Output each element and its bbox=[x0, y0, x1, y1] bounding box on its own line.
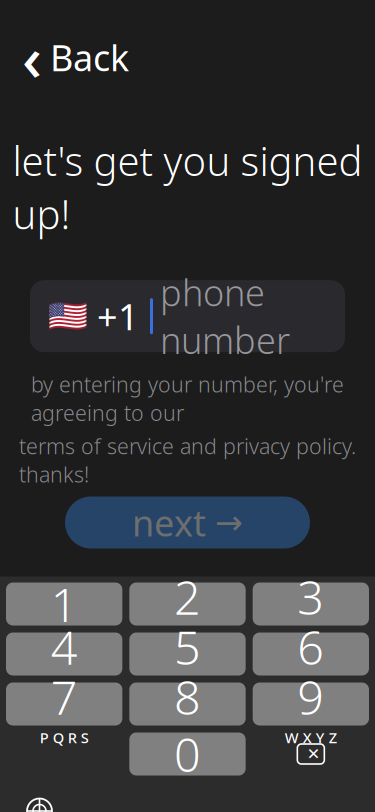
staticText: let's get you signed up! bbox=[12, 134, 362, 240]
button[interactable]: 9 bbox=[253, 682, 369, 725]
staticText: A B C bbox=[169, 628, 206, 647]
staticText: → bbox=[215, 504, 243, 541]
staticText: W X Y Z bbox=[285, 728, 337, 747]
staticText: 4 bbox=[51, 616, 78, 678]
button[interactable]: 2 bbox=[129, 582, 246, 625]
staticText: G H I bbox=[47, 678, 82, 697]
button[interactable]: 7 bbox=[6, 682, 122, 725]
staticText: phone number bbox=[160, 268, 290, 364]
staticText: 2 bbox=[174, 566, 201, 628]
staticText: 7 bbox=[51, 666, 78, 728]
button[interactable]: 3 bbox=[253, 582, 369, 625]
staticText: 🇺🇸 bbox=[48, 298, 88, 334]
staticText: 1 bbox=[51, 573, 78, 635]
staticText: terms of service and privacy policy. tha… bbox=[19, 432, 356, 488]
staticText: ✕ bbox=[307, 745, 320, 763]
button[interactable]: 🇺🇸 bbox=[30, 280, 345, 352]
button[interactable]: 6 bbox=[253, 632, 369, 675]
button[interactable]: 8 bbox=[129, 682, 246, 725]
staticText: +1 bbox=[97, 292, 139, 340]
staticText: by entering your number, you're agreeing… bbox=[31, 370, 344, 427]
staticText: D E F bbox=[293, 628, 328, 647]
button[interactable]: 4 bbox=[6, 632, 122, 675]
button[interactable]: 1 bbox=[6, 582, 122, 625]
staticText: T U V bbox=[169, 728, 205, 747]
staticText: P Q R S bbox=[40, 728, 89, 747]
button[interactable]: 0 bbox=[129, 732, 246, 775]
staticText: 0 bbox=[174, 723, 201, 785]
staticText: 9 bbox=[297, 666, 324, 728]
staticText: J K L bbox=[173, 678, 202, 697]
staticText: 5 bbox=[174, 616, 201, 678]
staticText: Back bbox=[50, 33, 129, 81]
button[interactable]: next bbox=[65, 496, 310, 548]
staticText: M N O bbox=[289, 678, 332, 697]
staticText: 8 bbox=[174, 666, 201, 728]
button[interactable]: Delete bbox=[253, 732, 369, 775]
button[interactable]: 5 bbox=[129, 632, 246, 675]
staticText: next bbox=[132, 499, 206, 546]
button[interactable]: Switch keyboard bbox=[14, 785, 65, 812]
staticText: 6 bbox=[297, 616, 324, 678]
staticText: 3 bbox=[297, 566, 324, 628]
staticText: ‹ bbox=[22, 16, 42, 98]
button[interactable]: ‹ bbox=[12, 12, 139, 102]
